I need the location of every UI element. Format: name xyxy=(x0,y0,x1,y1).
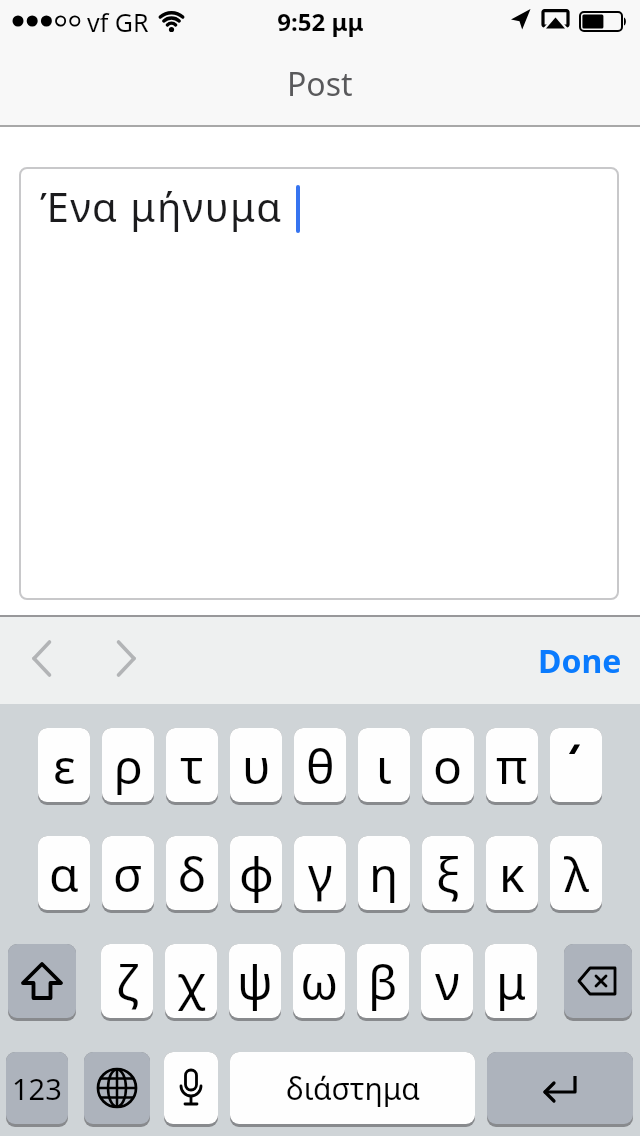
button[interactable]: α xyxy=(38,836,90,913)
button[interactable]: Done xyxy=(538,639,622,683)
button[interactable] xyxy=(8,944,76,1021)
button[interactable]: ν xyxy=(421,944,473,1021)
button[interactable] xyxy=(550,728,602,805)
button[interactable] xyxy=(31,640,52,677)
staticText: διάστημα xyxy=(286,1068,420,1109)
staticText: δ xyxy=(178,841,207,906)
button[interactable]: τ xyxy=(166,728,218,805)
staticText: β xyxy=(368,949,398,1014)
button[interactable]: σ xyxy=(102,836,154,913)
staticText: η xyxy=(369,841,399,906)
staticText: γ xyxy=(308,841,333,906)
button[interactable]: ω xyxy=(293,944,345,1021)
staticText: ν xyxy=(435,949,460,1014)
button[interactable]: ξ xyxy=(422,836,474,913)
staticText: φ xyxy=(239,841,274,906)
button[interactable]: ο xyxy=(422,728,474,805)
staticText: Post xyxy=(287,62,353,106)
button[interactable]: υ xyxy=(230,728,282,805)
staticText: Ένα μήνυμα xyxy=(40,179,283,233)
staticText: ι xyxy=(376,733,392,798)
button[interactable]: 123 xyxy=(6,1052,68,1127)
button[interactable]: χ xyxy=(165,944,217,1021)
button[interactable]: ψ xyxy=(229,944,281,1021)
staticText: 123 xyxy=(12,1069,62,1108)
staticText: ω xyxy=(300,949,339,1014)
staticText: ζ xyxy=(116,949,139,1014)
staticText: θ xyxy=(306,733,335,798)
staticText: Done xyxy=(538,639,622,683)
staticText: ρ xyxy=(114,733,143,798)
staticText: κ xyxy=(499,841,525,906)
staticText: ψ xyxy=(237,949,273,1014)
button[interactable]: φ xyxy=(230,836,282,913)
button[interactable]: λ xyxy=(550,836,602,913)
button[interactable]: δ xyxy=(166,836,218,913)
staticText: 9:52 μμ xyxy=(277,5,364,38)
staticText: υ xyxy=(242,733,271,798)
staticText: α xyxy=(49,841,79,906)
button[interactable]: η xyxy=(358,836,410,913)
staticText: μ xyxy=(496,949,527,1014)
staticText: π xyxy=(496,733,528,798)
staticText: ο xyxy=(433,733,463,798)
button[interactable] xyxy=(84,1052,150,1127)
button[interactable]: ε xyxy=(38,728,90,805)
button[interactable]: κ xyxy=(486,836,538,913)
button[interactable]: β xyxy=(357,944,409,1021)
button[interactable]: μ xyxy=(485,944,537,1021)
button[interactable]: Ένα μήνυμα xyxy=(19,167,619,600)
staticText: σ xyxy=(113,841,143,906)
button[interactable] xyxy=(564,944,632,1021)
staticText: λ xyxy=(564,841,589,906)
button[interactable]: ρ xyxy=(102,728,154,805)
button[interactable] xyxy=(487,1052,633,1127)
staticText: vf GR xyxy=(87,5,149,39)
staticText: τ xyxy=(180,733,204,798)
button[interactable]: ι xyxy=(358,728,410,805)
button[interactable]: διάστημα xyxy=(230,1052,475,1127)
button[interactable]: ζ xyxy=(101,944,153,1021)
button[interactable]: π xyxy=(486,728,538,805)
staticText: ξ xyxy=(436,841,460,906)
button[interactable]: γ xyxy=(294,836,346,913)
staticText: ε xyxy=(53,733,76,798)
button[interactable]: θ xyxy=(294,728,346,805)
staticText: χ xyxy=(177,949,206,1014)
button[interactable] xyxy=(116,640,137,677)
button[interactable] xyxy=(164,1052,218,1127)
